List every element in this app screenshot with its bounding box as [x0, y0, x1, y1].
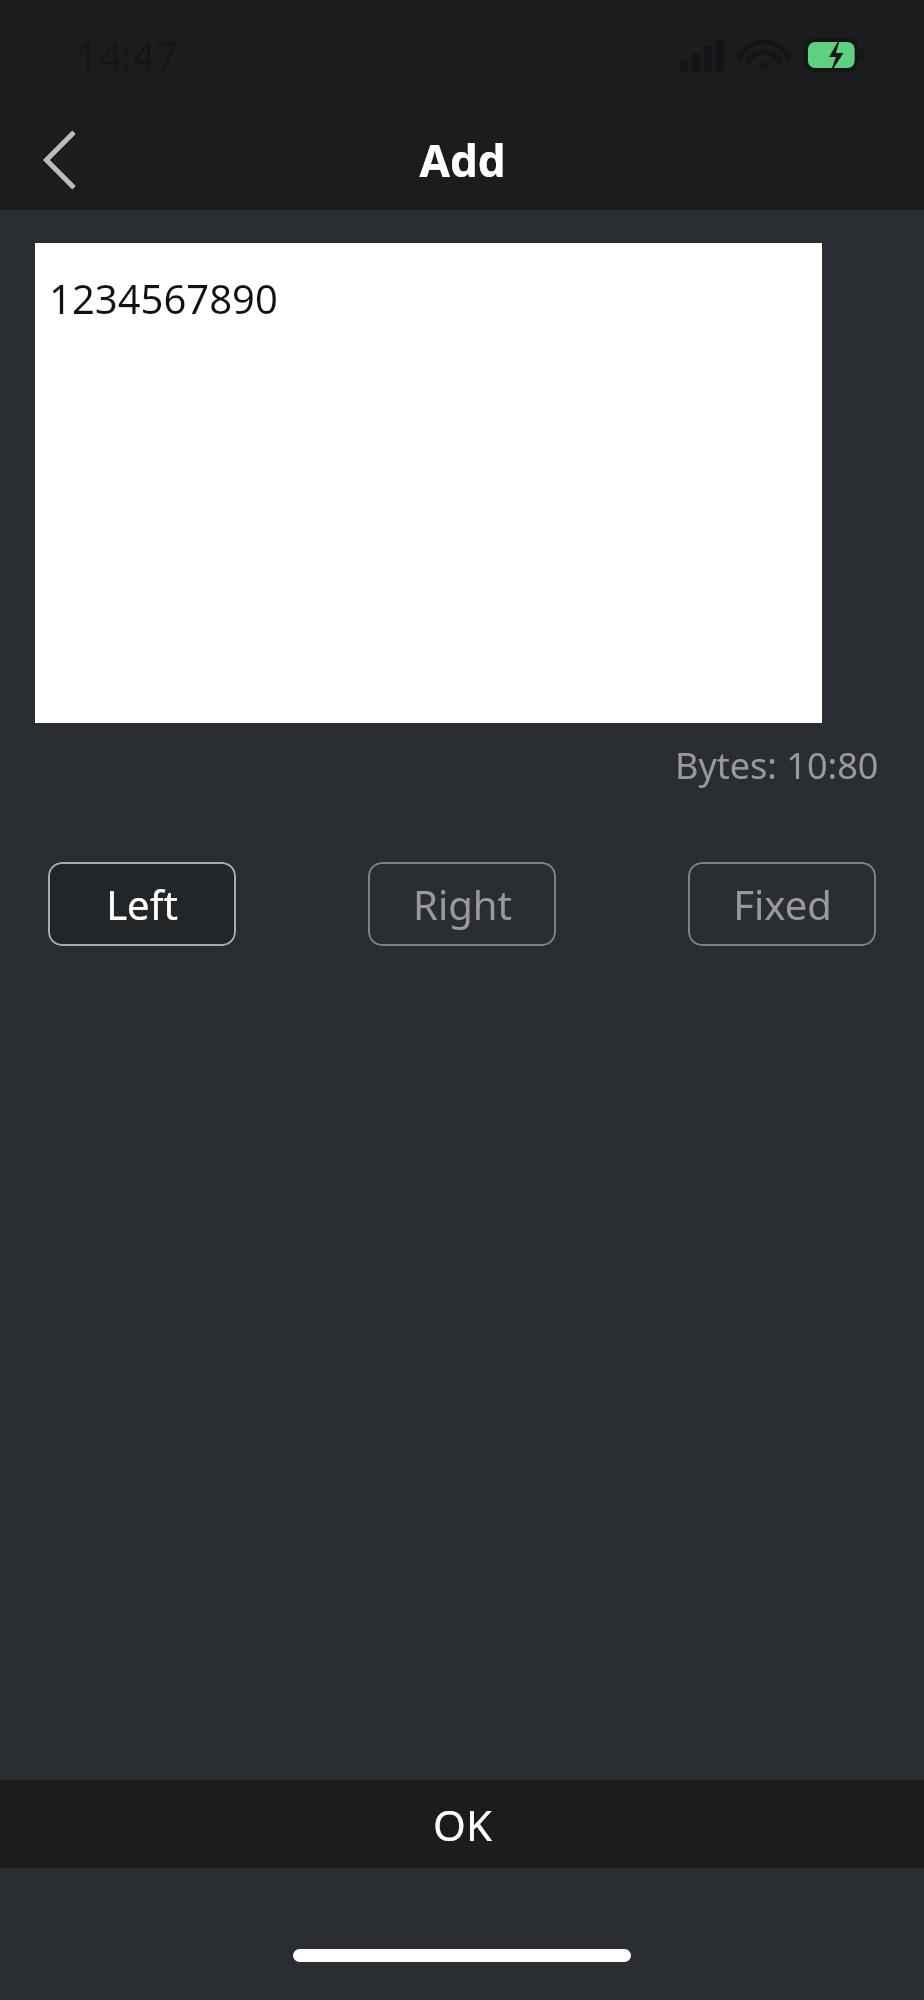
staticText: OK — [433, 1796, 492, 1853]
button[interactable]: Left — [48, 862, 236, 946]
staticText: Bytes: 10:80 — [675, 741, 879, 790]
staticText: Left — [106, 877, 178, 931]
staticText: Right — [413, 877, 512, 931]
staticText: Fixed — [733, 877, 832, 931]
button[interactable]: Back — [22, 122, 98, 198]
button[interactable]: Right — [368, 862, 556, 946]
button[interactable]: OK — [0, 1780, 924, 1868]
button[interactable]: Fixed — [688, 862, 876, 946]
staticText: 1234567890 — [49, 271, 278, 325]
staticText: Add — [419, 130, 506, 190]
button[interactable]: 1234567890 — [35, 243, 822, 723]
